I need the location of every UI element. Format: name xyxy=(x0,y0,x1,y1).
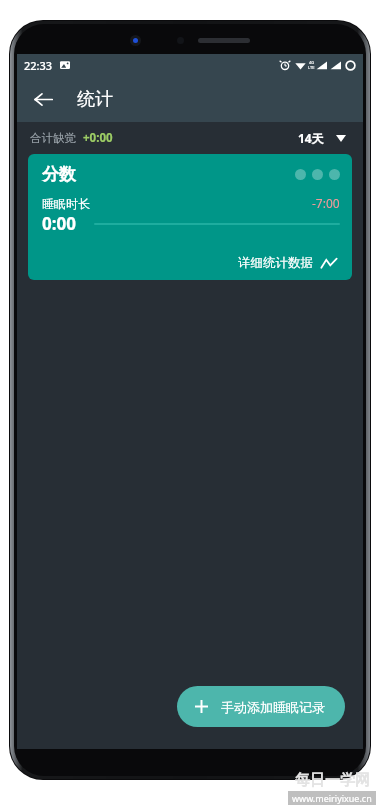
button[interactable]: 分数 xyxy=(28,154,352,280)
staticText: 详细统计数据 xyxy=(238,255,313,271)
staticText: 睡眠时长 xyxy=(42,196,90,211)
staticText: 统计 xyxy=(77,88,113,111)
staticText: www.meiriyixue.cn xyxy=(292,792,372,804)
button[interactable]: 手动添加睡眠记录 xyxy=(177,686,345,727)
staticText: LTE xyxy=(308,65,315,70)
button[interactable]: 14天 xyxy=(294,127,350,149)
staticText: +0:00 xyxy=(83,130,113,146)
staticText: 每日一学网 xyxy=(295,771,370,790)
staticText: 分数 xyxy=(42,164,76,185)
staticText: 4G xyxy=(309,60,315,65)
staticText: 合计缺觉 xyxy=(30,131,76,145)
button[interactable]: 详细统计数据 xyxy=(235,252,340,274)
button[interactable]: Back xyxy=(23,79,63,119)
staticText: 0:00 xyxy=(42,212,76,235)
staticText: 14天 xyxy=(298,130,324,146)
staticText: 手动添加睡眠记录 xyxy=(221,699,325,715)
staticText: -7:00 xyxy=(312,195,340,211)
staticText: 22:33 xyxy=(24,58,53,73)
